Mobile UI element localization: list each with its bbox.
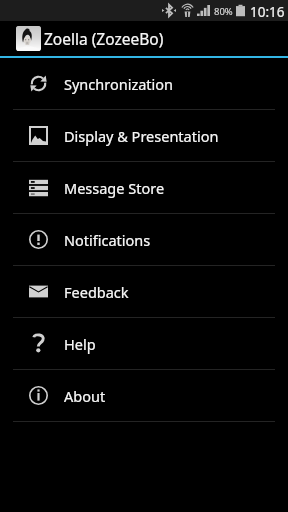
other: Account photo — [16, 26, 41, 51]
button[interactable]: Account photo — [0, 21, 288, 56]
staticText: Synchronization — [64, 74, 174, 94]
staticText: Message Store — [64, 178, 165, 198]
staticText: Display & Presentation — [64, 126, 219, 146]
button[interactable]: Notifications — [0, 214, 288, 265]
staticText: 10:16 — [250, 3, 285, 21]
staticText: Notifications — [64, 230, 151, 250]
button[interactable]: Message Store — [0, 162, 288, 213]
button[interactable]: Feedback — [0, 266, 288, 317]
staticText: Zoella (ZozeeBo) — [44, 28, 164, 49]
button[interactable]: Synchronization — [0, 58, 288, 109]
staticText: Feedback — [64, 282, 129, 302]
staticText: About — [64, 386, 106, 406]
staticText: Help — [64, 334, 96, 354]
button[interactable]: Help — [0, 318, 288, 369]
staticText: 80% — [214, 5, 233, 18]
button[interactable]: About — [0, 370, 288, 421]
button[interactable]: Display & Presentation — [0, 110, 288, 161]
